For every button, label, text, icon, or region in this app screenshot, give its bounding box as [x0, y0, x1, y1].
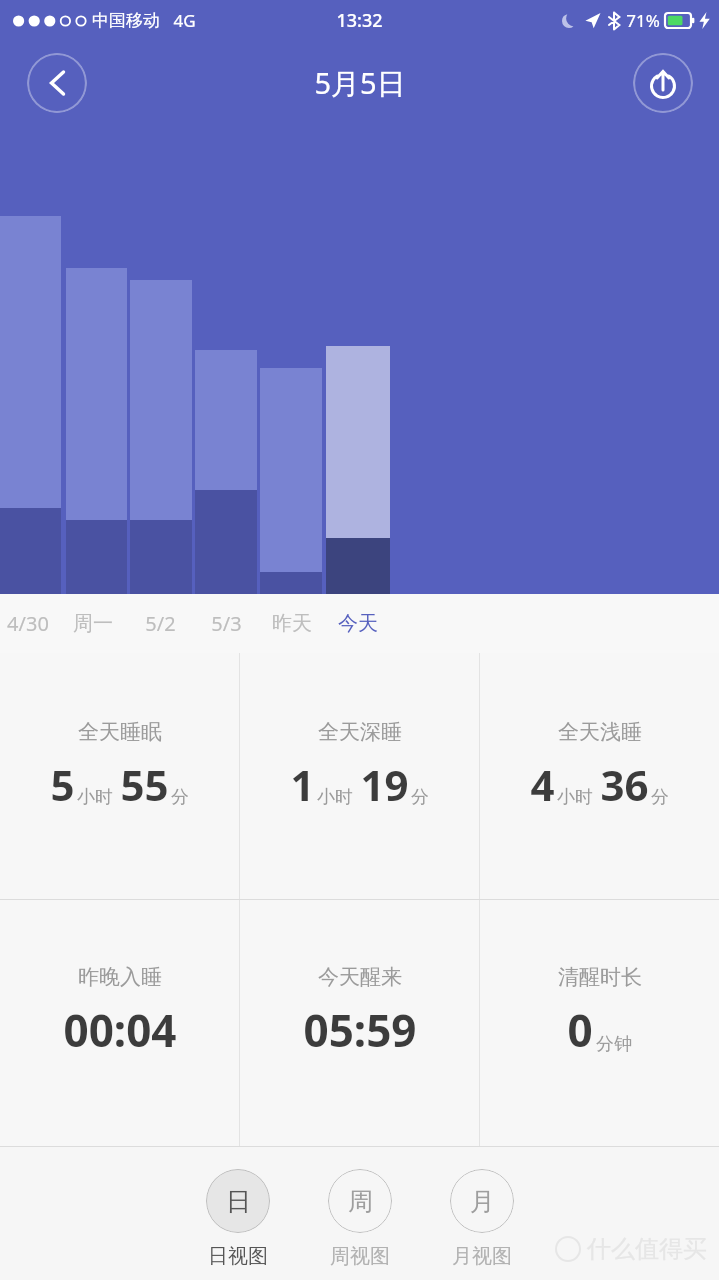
- staticText: 周: [348, 1186, 373, 1217]
- staticText: 今天: [338, 611, 378, 636]
- button[interactable]: 5/3: [192, 594, 260, 653]
- button[interactable]: Share: [633, 53, 693, 113]
- staticText: 19: [360, 756, 409, 813]
- button[interactable]: 周: [328, 1169, 392, 1269]
- button[interactable]: 清醒时长: [480, 900, 719, 1146]
- staticText: 小时: [77, 786, 113, 809]
- staticText: 全天深睡: [318, 719, 402, 745]
- button[interactable]: 4/30: [0, 594, 62, 653]
- button[interactable]: 全天浅睡: [480, 653, 719, 899]
- staticText: 分: [411, 786, 429, 809]
- button[interactable]: 昨天: [258, 594, 326, 653]
- staticText: 00:04: [63, 1000, 177, 1060]
- staticText: 日: [226, 1186, 251, 1217]
- staticText: 4G: [173, 9, 196, 32]
- staticText: 5月5日: [314, 63, 406, 103]
- staticText: 0: [567, 1000, 593, 1060]
- staticText: 分: [171, 786, 189, 809]
- staticText: 55: [120, 756, 169, 813]
- staticText: 今天醒来: [318, 964, 402, 990]
- button[interactable]: 5/2: [126, 594, 194, 653]
- staticText: 什么值得买: [587, 1234, 707, 1264]
- staticText: 1: [290, 756, 315, 813]
- staticText: 4: [530, 756, 555, 813]
- staticText: 昨晚入睡: [78, 964, 162, 990]
- staticText: 中国移动: [92, 10, 160, 31]
- staticText: 昨天: [272, 611, 312, 636]
- button[interactable]: 昨晚入睡: [0, 900, 239, 1146]
- staticText: 周一: [73, 611, 113, 636]
- staticText: 4/30: [7, 610, 49, 637]
- staticText: 全天浅睡: [558, 719, 642, 745]
- button[interactable]: Back: [27, 53, 87, 113]
- staticText: 小时: [557, 786, 593, 809]
- staticText: 清醒时长: [558, 964, 642, 990]
- button[interactable]: 今天: [324, 594, 392, 653]
- staticText: 5/3: [211, 610, 242, 637]
- button[interactable]: 周一: [59, 594, 127, 653]
- staticText: 月视图: [452, 1244, 512, 1269]
- staticText: 小时: [317, 786, 353, 809]
- button[interactable]: 月: [450, 1169, 514, 1269]
- staticText: 分钟: [596, 1033, 632, 1056]
- staticText: 05:59: [303, 1000, 417, 1060]
- staticText: 周视图: [330, 1244, 390, 1269]
- staticText: 71%: [626, 9, 660, 32]
- button[interactable]: 日: [206, 1169, 270, 1269]
- staticText: 分: [651, 786, 669, 809]
- staticText: 5/2: [145, 610, 176, 637]
- button[interactable]: 今天醒来: [240, 900, 479, 1146]
- staticText: 月: [470, 1186, 495, 1217]
- staticText: 5: [50, 756, 75, 813]
- staticText: 日视图: [208, 1244, 268, 1269]
- button[interactable]: 全天深睡: [240, 653, 479, 899]
- staticText: 全天睡眠: [78, 719, 162, 745]
- staticText: 36: [600, 756, 649, 813]
- staticText: 13:32: [336, 8, 383, 33]
- button[interactable]: 全天睡眠: [0, 653, 239, 899]
